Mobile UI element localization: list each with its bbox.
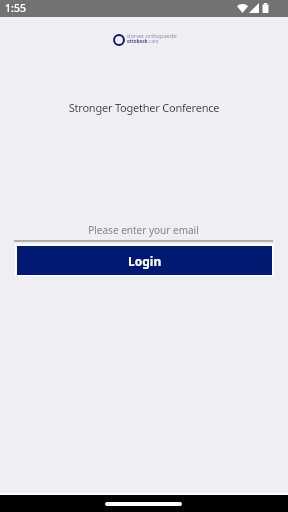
other: Dorset Orthopaedic – ottobock.care [110,31,178,47]
staticText: Login [128,253,162,269]
other: Wi-Fi signal [237,3,248,13]
button[interactable]: Login [15,244,274,276]
other: Mobile signal [249,3,259,13]
staticText: Stronger Together Conference [0,100,288,115]
staticText: 1:55 [5,1,27,15]
staticText: dorset orthopaedic [127,32,178,40]
button[interactable]: Please enter your email [14,216,273,242]
other: Home [105,502,182,506]
staticText: ottobock [127,38,148,44]
staticText: Please enter your email [14,223,273,237]
staticText: .care [148,38,159,44]
other: Battery [261,3,270,13]
